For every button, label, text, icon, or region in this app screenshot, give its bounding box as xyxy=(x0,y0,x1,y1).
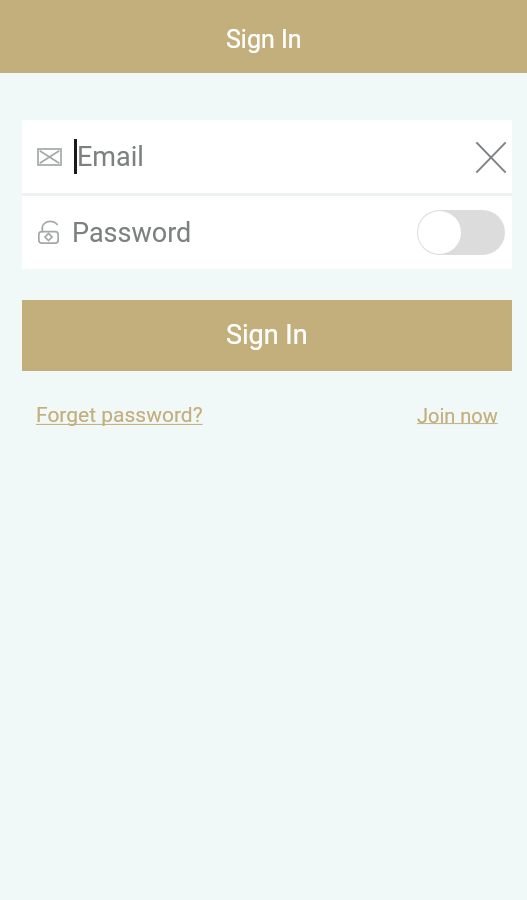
button[interactable]: Sign In xyxy=(22,300,512,371)
staticText: Password xyxy=(72,217,192,249)
staticText: Sign In xyxy=(226,319,308,351)
button[interactable]: Join now xyxy=(417,404,498,427)
button[interactable]: Clear text xyxy=(476,127,505,187)
staticText: Sign In xyxy=(226,25,302,54)
button[interactable]: Forget password? xyxy=(36,403,203,428)
button[interactable]: Password xyxy=(22,196,512,269)
button[interactable]: Email xyxy=(22,120,512,193)
staticText: Forget password? xyxy=(36,403,203,428)
staticText: Email xyxy=(77,141,144,173)
staticText: Join now xyxy=(417,404,498,427)
button[interactable]: Show password xyxy=(417,210,505,255)
